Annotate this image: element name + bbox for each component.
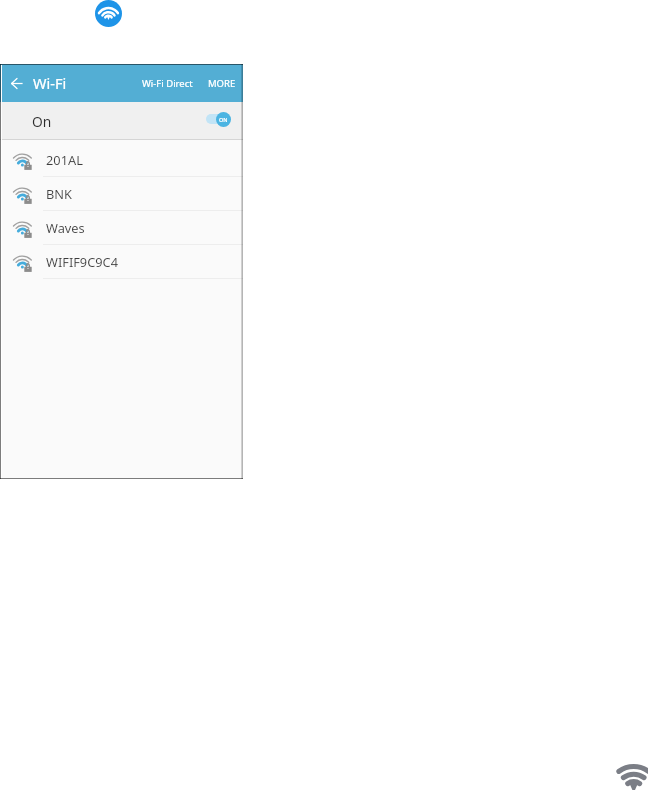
button[interactable]: Wi-Fi Direct <box>139 71 196 96</box>
staticText: ON <box>219 116 228 123</box>
staticText: Wi-Fi Direct <box>142 77 193 90</box>
staticText: BNK <box>46 185 72 202</box>
button[interactable]: Waves <box>0 211 243 245</box>
staticText: WIFIF9C9C4 <box>46 253 118 270</box>
staticText: Wi-Fi <box>33 73 67 93</box>
staticText: Waves <box>46 219 85 236</box>
staticText: On <box>32 112 52 131</box>
button[interactable]: 201AL <box>0 143 243 177</box>
button[interactable]: MORE <box>205 71 239 96</box>
button[interactable]: BNK <box>0 177 243 211</box>
staticText: MORE <box>208 77 236 90</box>
button[interactable]: On <box>0 102 243 140</box>
staticText: 201AL <box>46 151 83 168</box>
button[interactable]: Back <box>6 72 28 94</box>
button[interactable]: WIFIF9C9C4 <box>0 245 243 279</box>
other: Wi-Fi <box>95 0 122 27</box>
